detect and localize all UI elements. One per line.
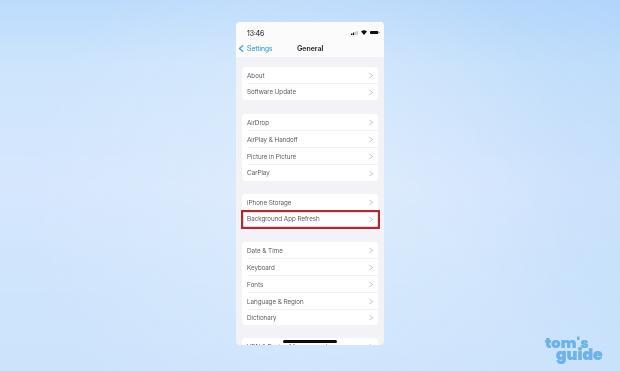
button[interactable]: Picture in Picture <box>242 148 378 165</box>
staticText: AirDrop <box>247 119 269 127</box>
staticText: Keyboard <box>247 264 275 272</box>
staticText: iPhone Storage <box>247 199 292 207</box>
staticText: AirPlay & Handoff <box>247 136 298 144</box>
button[interactable]: Dictionary <box>242 310 378 325</box>
staticText: tom's <box>545 333 589 353</box>
button[interactable]: About <box>242 67 378 84</box>
button[interactable]: AirPlay & Handoff <box>242 131 378 148</box>
staticText: Date & Time <box>247 247 283 255</box>
other: Highlighted: Background App Refresh <box>241 210 380 229</box>
button[interactable]: iPhone Storage <box>242 194 378 211</box>
staticText: Software Update <box>247 88 296 96</box>
button[interactable]: Software Update <box>242 84 378 100</box>
staticText: CarPlay <box>247 169 270 177</box>
staticText: Fonts <box>247 281 264 289</box>
button[interactable]: Language & Region <box>242 293 378 310</box>
button[interactable]: Date & Time <box>242 242 378 259</box>
button[interactable]: VPN & Device Management <box>242 338 378 345</box>
button[interactable]: Keyboard <box>242 259 378 276</box>
staticText: Language & Region <box>247 298 304 306</box>
staticText: Settings <box>247 44 273 53</box>
staticText: VPN & Device Management <box>247 343 328 345</box>
staticText: Dictionary <box>247 314 277 322</box>
button[interactable]: CarPlay <box>242 165 378 181</box>
staticText: 13:46 <box>247 29 265 37</box>
staticText: Background App Refresh <box>247 215 320 223</box>
staticText: guide <box>556 344 603 366</box>
staticText: Picture in Picture <box>247 153 297 161</box>
button[interactable]: Background App Refresh <box>242 211 378 227</box>
staticText: About <box>247 72 265 80</box>
staticText: General <box>297 44 324 53</box>
button[interactable]: Settings <box>237 42 275 55</box>
button[interactable]: AirDrop <box>242 114 378 131</box>
button[interactable]: Fonts <box>242 276 378 293</box>
